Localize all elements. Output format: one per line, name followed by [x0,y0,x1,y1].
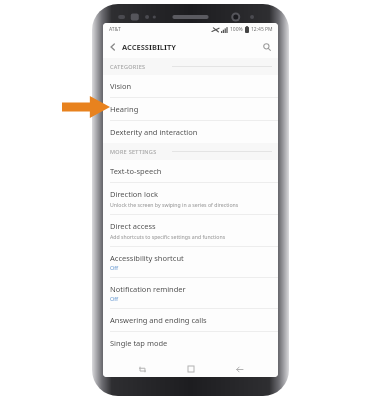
staticText: AT&T [109,26,121,33]
button[interactable]: Direct access [103,215,278,246]
staticText: Vision [110,81,132,91]
staticText: Direction lock [110,189,159,199]
staticText: Answering and ending calls [110,315,207,325]
staticText: CATEGORIES [110,63,146,70]
button[interactable]: Back [106,40,120,54]
staticText: Notification reminder [110,284,186,294]
button[interactable]: Vision [103,75,278,97]
staticText: Add shortcuts to specific settings and f… [110,233,226,240]
staticText: Single tap mode [110,338,168,348]
staticText: Dexterity and interaction [110,127,198,137]
button[interactable]: Direction lock [103,183,278,214]
staticText: Text-to-speech [110,166,162,176]
button[interactable]: Answering and ending calls [103,309,278,331]
staticText: Off [110,264,119,271]
staticText: Accessibility shortcut [110,253,184,263]
staticText: Off [110,295,119,302]
staticText: Hearing [110,104,139,114]
staticText: 12:45 PM [251,26,273,33]
button[interactable]: Back [229,361,249,377]
button[interactable]: Single tap mode [103,332,278,354]
button[interactable]: Search [260,40,274,54]
staticText: Unlock the screen by swiping in a series… [110,201,239,208]
button[interactable]: Dexterity and interaction [103,121,278,143]
staticText: Direct access [110,221,156,231]
button[interactable]: Recents [132,361,152,377]
staticText: ACCESSIBILITY [122,42,176,52]
button[interactable]: Notification reminder [103,278,278,308]
staticText: 100% [230,26,243,33]
staticText: MORE SETTINGS [110,148,157,155]
other: Pointer to Hearing [62,96,110,118]
button[interactable]: Text-to-speech [103,160,278,182]
button[interactable]: Accessibility shortcut [103,247,278,277]
button[interactable]: Hearing [103,98,278,120]
button[interactable]: Home [181,361,201,377]
